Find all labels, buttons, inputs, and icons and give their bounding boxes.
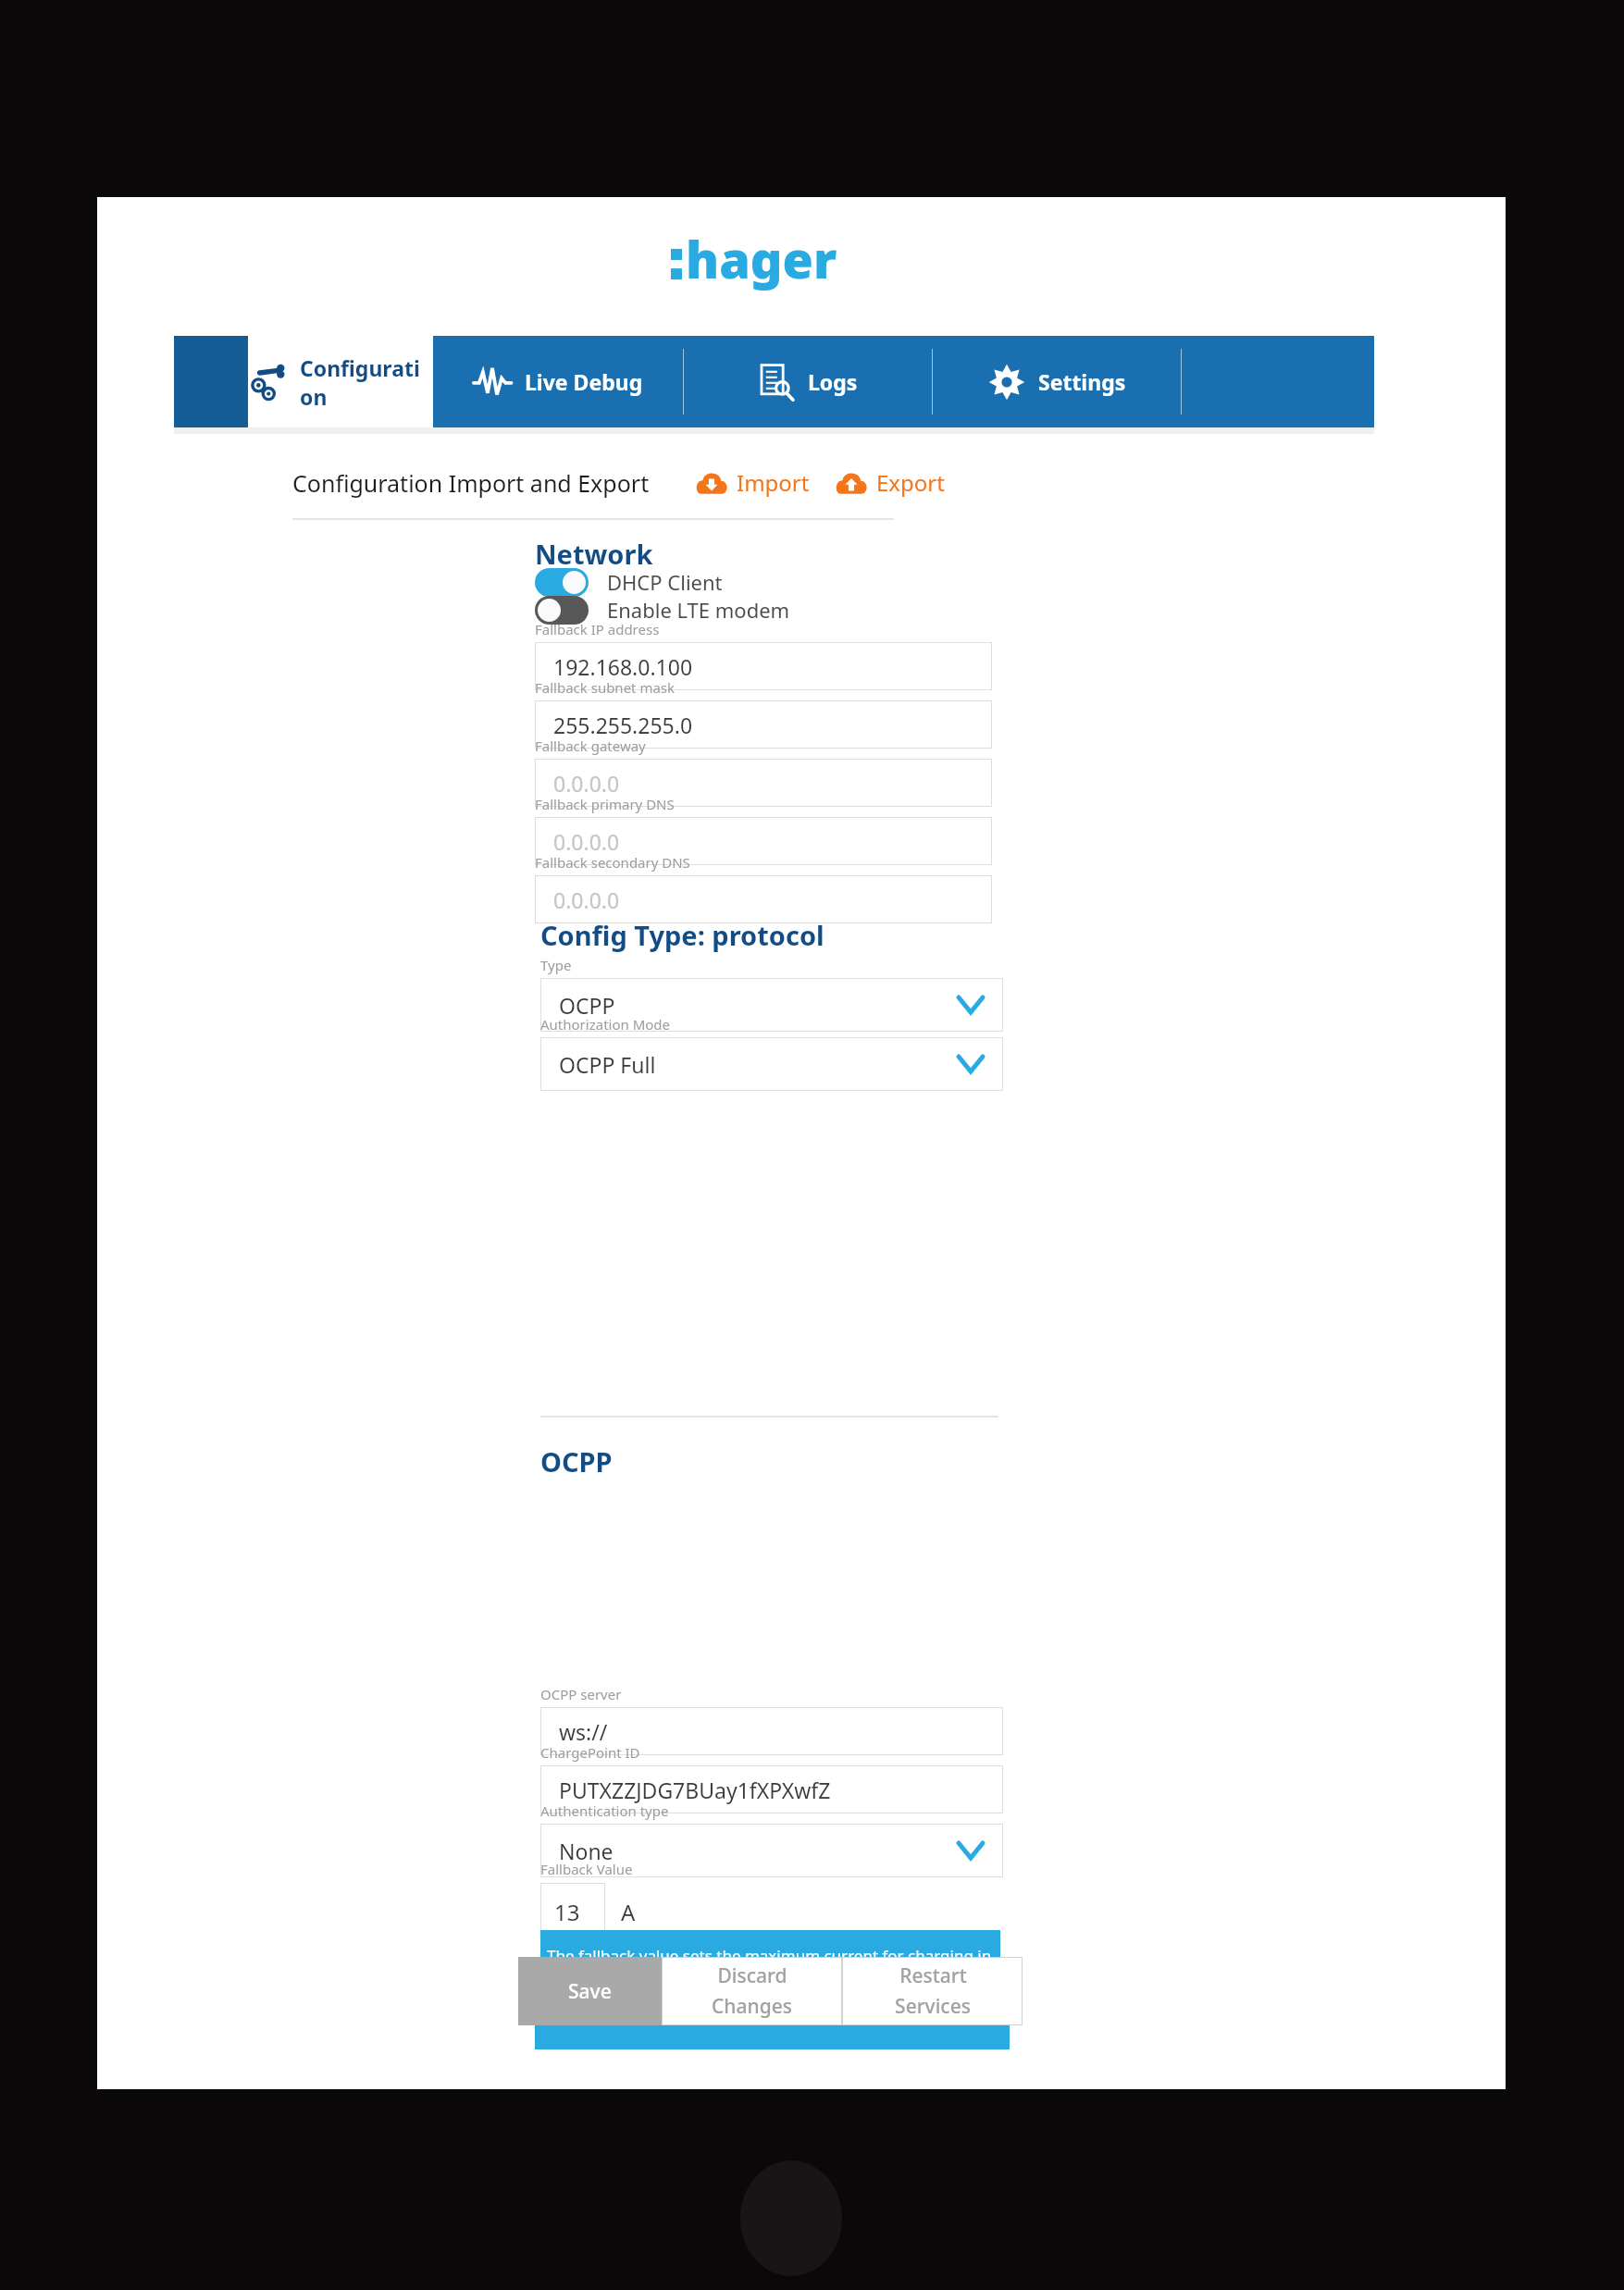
staticText: 0.0.0.0 xyxy=(553,827,620,856)
staticText: 0.0.0.0 xyxy=(553,885,620,914)
staticText: 255.255.255.0 xyxy=(553,711,693,739)
staticText: Enable LTE modem xyxy=(607,596,790,624)
staticText: PUTXZZJDG7BUay1fXPXwfZ xyxy=(559,1776,831,1804)
staticText: Fallback secondary DNS xyxy=(535,853,690,872)
other: Settings xyxy=(988,364,1025,401)
staticText: Discard xyxy=(717,1962,787,1989)
staticText: Logs xyxy=(808,367,858,396)
button[interactable]: 255.255.255.0 xyxy=(535,700,992,749)
button[interactable]: Configuration xyxy=(248,336,433,427)
staticText: Save xyxy=(568,1978,612,2005)
staticText: Restart xyxy=(899,1962,967,1989)
staticText: Config Type: protocol xyxy=(540,917,824,953)
button[interactable]: 0.0.0.0 xyxy=(535,875,992,923)
button[interactable]: Logs xyxy=(684,336,932,427)
staticText: Fallback gateway xyxy=(535,737,646,755)
staticText: Authorization Mode xyxy=(540,1015,671,1034)
button[interactable]: Save xyxy=(518,1957,662,2025)
button[interactable]: PUTXZZJDG7BUay1fXPXwfZ xyxy=(540,1765,1003,1813)
button[interactable]: Restart xyxy=(842,1957,1023,2025)
button[interactable]: OCPP xyxy=(540,978,1003,1032)
button[interactable]: Import xyxy=(692,464,813,501)
staticText: Import xyxy=(737,467,810,498)
staticText: OCPP Full xyxy=(559,1050,656,1079)
other: Live Debug xyxy=(473,363,512,402)
staticText: A xyxy=(621,1897,636,1927)
staticText: The fallback value sets the maximum curr… xyxy=(547,1945,992,1966)
button[interactable]: 13 xyxy=(540,1883,605,1940)
other: Open Type menu xyxy=(959,997,983,1012)
staticText: ChargePoint ID xyxy=(540,1743,640,1762)
button[interactable]: 0.0.0.0 xyxy=(535,817,992,865)
staticText: Configuration xyxy=(300,353,433,411)
other: Configuration xyxy=(248,363,287,402)
staticText: Settings xyxy=(1038,367,1126,396)
staticText: None xyxy=(559,1837,614,1865)
button[interactable]: None xyxy=(540,1824,1003,1877)
button[interactable]: 0.0.0.0 xyxy=(535,759,992,807)
staticText: Type xyxy=(540,956,572,974)
staticText: Fallback Value xyxy=(540,1860,633,1878)
button[interactable]: Export xyxy=(832,464,948,501)
staticText: Fallback subnet mask xyxy=(535,678,676,697)
button[interactable]: Live Debug xyxy=(433,336,683,427)
other: Logs xyxy=(758,364,795,401)
other: Open Authentication type menu xyxy=(959,1843,983,1858)
button[interactable]: ws:// xyxy=(540,1707,1003,1755)
staticText: OCPP xyxy=(559,991,615,1020)
button[interactable]: OCPP Full xyxy=(540,1037,1003,1091)
button[interactable]: Discard xyxy=(662,1957,842,2025)
staticText: Services xyxy=(895,1993,971,2020)
staticText: Fallback primary DNS xyxy=(535,795,675,813)
staticText: DHCP Client xyxy=(607,568,723,596)
staticText: Network xyxy=(535,536,653,572)
button[interactable]: Settings xyxy=(933,336,1181,427)
staticText: OCPP server xyxy=(540,1685,622,1703)
staticText: case when the connection to the OCPP Cen… xyxy=(547,1976,994,1998)
staticText: 192.168.0.100 xyxy=(553,652,693,681)
other: Open Authorization Mode menu xyxy=(959,1057,983,1071)
staticText: Live Debug xyxy=(525,367,643,396)
staticText: OCPP xyxy=(540,1443,613,1479)
staticText: 0.0.0.0 xyxy=(553,769,620,798)
button[interactable]: Enable LTE modem xyxy=(535,588,790,631)
staticText: Changes xyxy=(712,1993,792,2020)
staticText: Authentication type xyxy=(540,1801,669,1820)
staticText: ws:// xyxy=(559,1717,608,1746)
button[interactable]: 192.168.0.100 xyxy=(535,642,992,690)
staticText: hager xyxy=(686,225,837,293)
button[interactable]: DHCP Client xyxy=(535,561,723,603)
staticText: 13 xyxy=(554,1897,580,1927)
staticText: Export xyxy=(876,467,945,498)
staticText: Fallback IP address xyxy=(535,620,660,638)
staticText: Configuration Import and Export xyxy=(292,467,650,499)
